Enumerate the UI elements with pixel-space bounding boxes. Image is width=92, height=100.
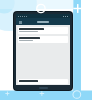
button[interactable] [18,79,68,84]
button[interactable] [18,36,68,43]
button[interactable] [18,27,68,34]
button[interactable]: Menu [18,20,22,24]
